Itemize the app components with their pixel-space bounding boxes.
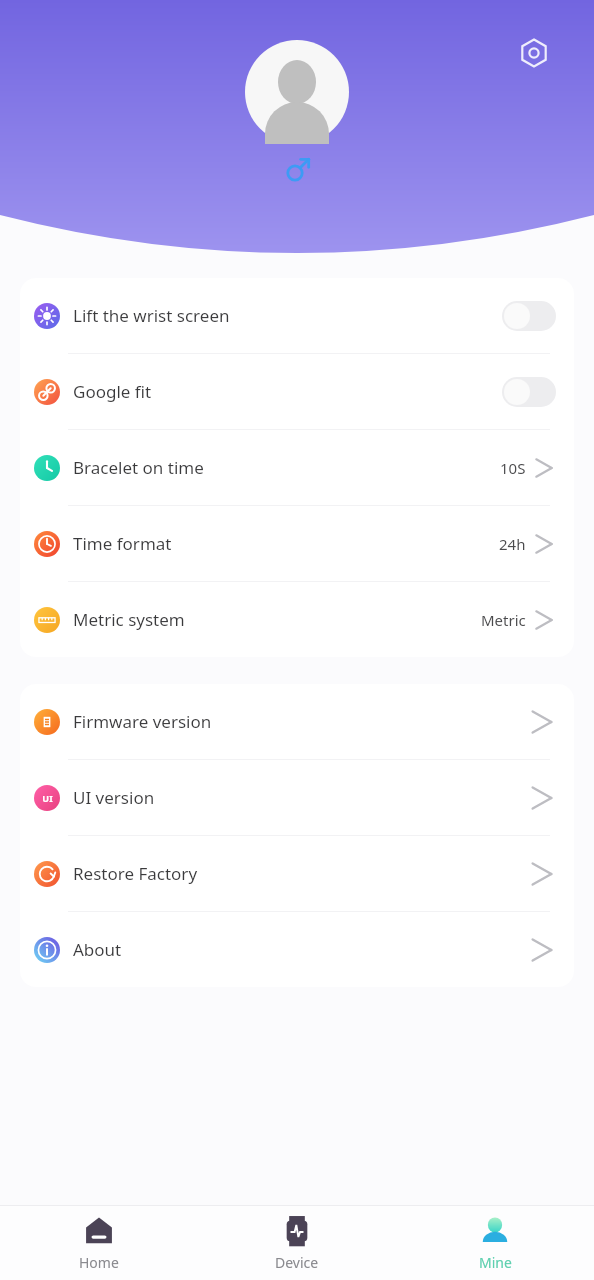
button[interactable]: Restore Factory: [20, 836, 574, 911]
button[interactable]: Settings: [514, 33, 554, 73]
button[interactable]: Firmware version: [20, 684, 574, 759]
staticText: 24h: [499, 534, 526, 554]
staticText: Restore Factory: [73, 862, 198, 885]
button[interactable]: Toggle: [502, 301, 556, 331]
button[interactable]: Home: [0, 1206, 198, 1280]
staticText: Metric system: [73, 608, 185, 631]
staticText: Google fit: [73, 380, 152, 403]
staticText: Device: [275, 1253, 319, 1272]
button[interactable]: Metric system: [20, 582, 574, 657]
staticText: Mine: [479, 1253, 512, 1272]
button[interactable]: Mine: [396, 1206, 594, 1280]
staticText: Home: [79, 1253, 119, 1272]
staticText: Time format: [73, 532, 172, 555]
button[interactable]: Device: [198, 1206, 396, 1280]
button[interactable]: Bracelet on time: [20, 430, 574, 505]
button[interactable]: About: [20, 912, 574, 987]
staticText: Metric: [481, 610, 526, 630]
button[interactable]: Profile avatar: [245, 40, 349, 144]
staticText: About: [73, 938, 122, 961]
button[interactable]: Toggle: [502, 377, 556, 407]
staticText: UI version: [73, 786, 155, 809]
button[interactable]: Time format: [20, 506, 574, 581]
staticText: UI: [42, 792, 53, 804]
staticText: Lift the wrist screen: [73, 304, 230, 327]
button[interactable]: Lift the wrist screen: [20, 278, 574, 353]
staticText: Firmware version: [73, 710, 212, 733]
staticText: Bracelet on time: [73, 456, 204, 479]
button[interactable]: UI: [20, 760, 574, 835]
button[interactable]: Google fit: [20, 354, 574, 429]
staticText: 10S: [500, 458, 526, 478]
